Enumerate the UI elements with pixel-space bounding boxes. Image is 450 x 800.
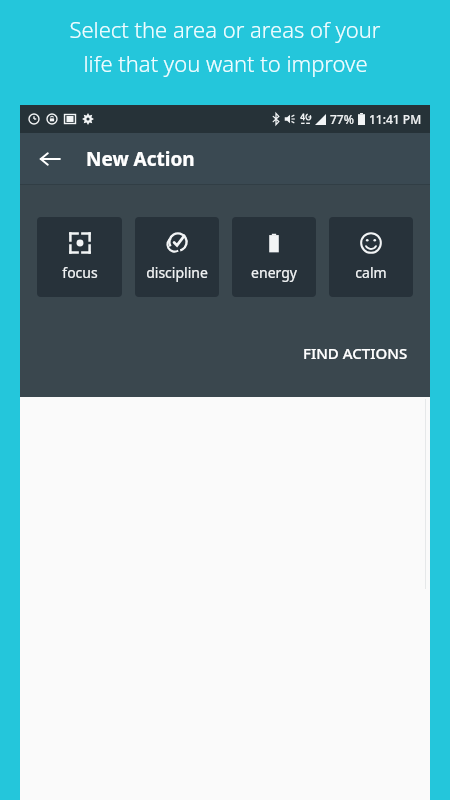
staticText: 77% — [330, 111, 354, 127]
staticText: calm — [355, 263, 387, 282]
button[interactable]: FIND ACTIONS — [293, 335, 418, 371]
button[interactable]: discipline — [135, 217, 219, 297]
staticText: 11:41 PM — [369, 111, 422, 127]
staticText: energy — [251, 263, 297, 282]
staticText: Select the area or areas of your — [69, 14, 381, 44]
staticText: FIND ACTIONS — [303, 343, 408, 363]
button[interactable]: focus — [37, 217, 122, 297]
staticText: focus — [62, 263, 98, 282]
button[interactable]: Back — [30, 139, 70, 179]
staticText: discipline — [146, 263, 208, 282]
staticText: New Action — [86, 146, 195, 172]
button[interactable]: calm — [329, 217, 413, 297]
button[interactable]: energy — [232, 217, 316, 297]
staticText: life that you want to improve — [83, 48, 368, 78]
